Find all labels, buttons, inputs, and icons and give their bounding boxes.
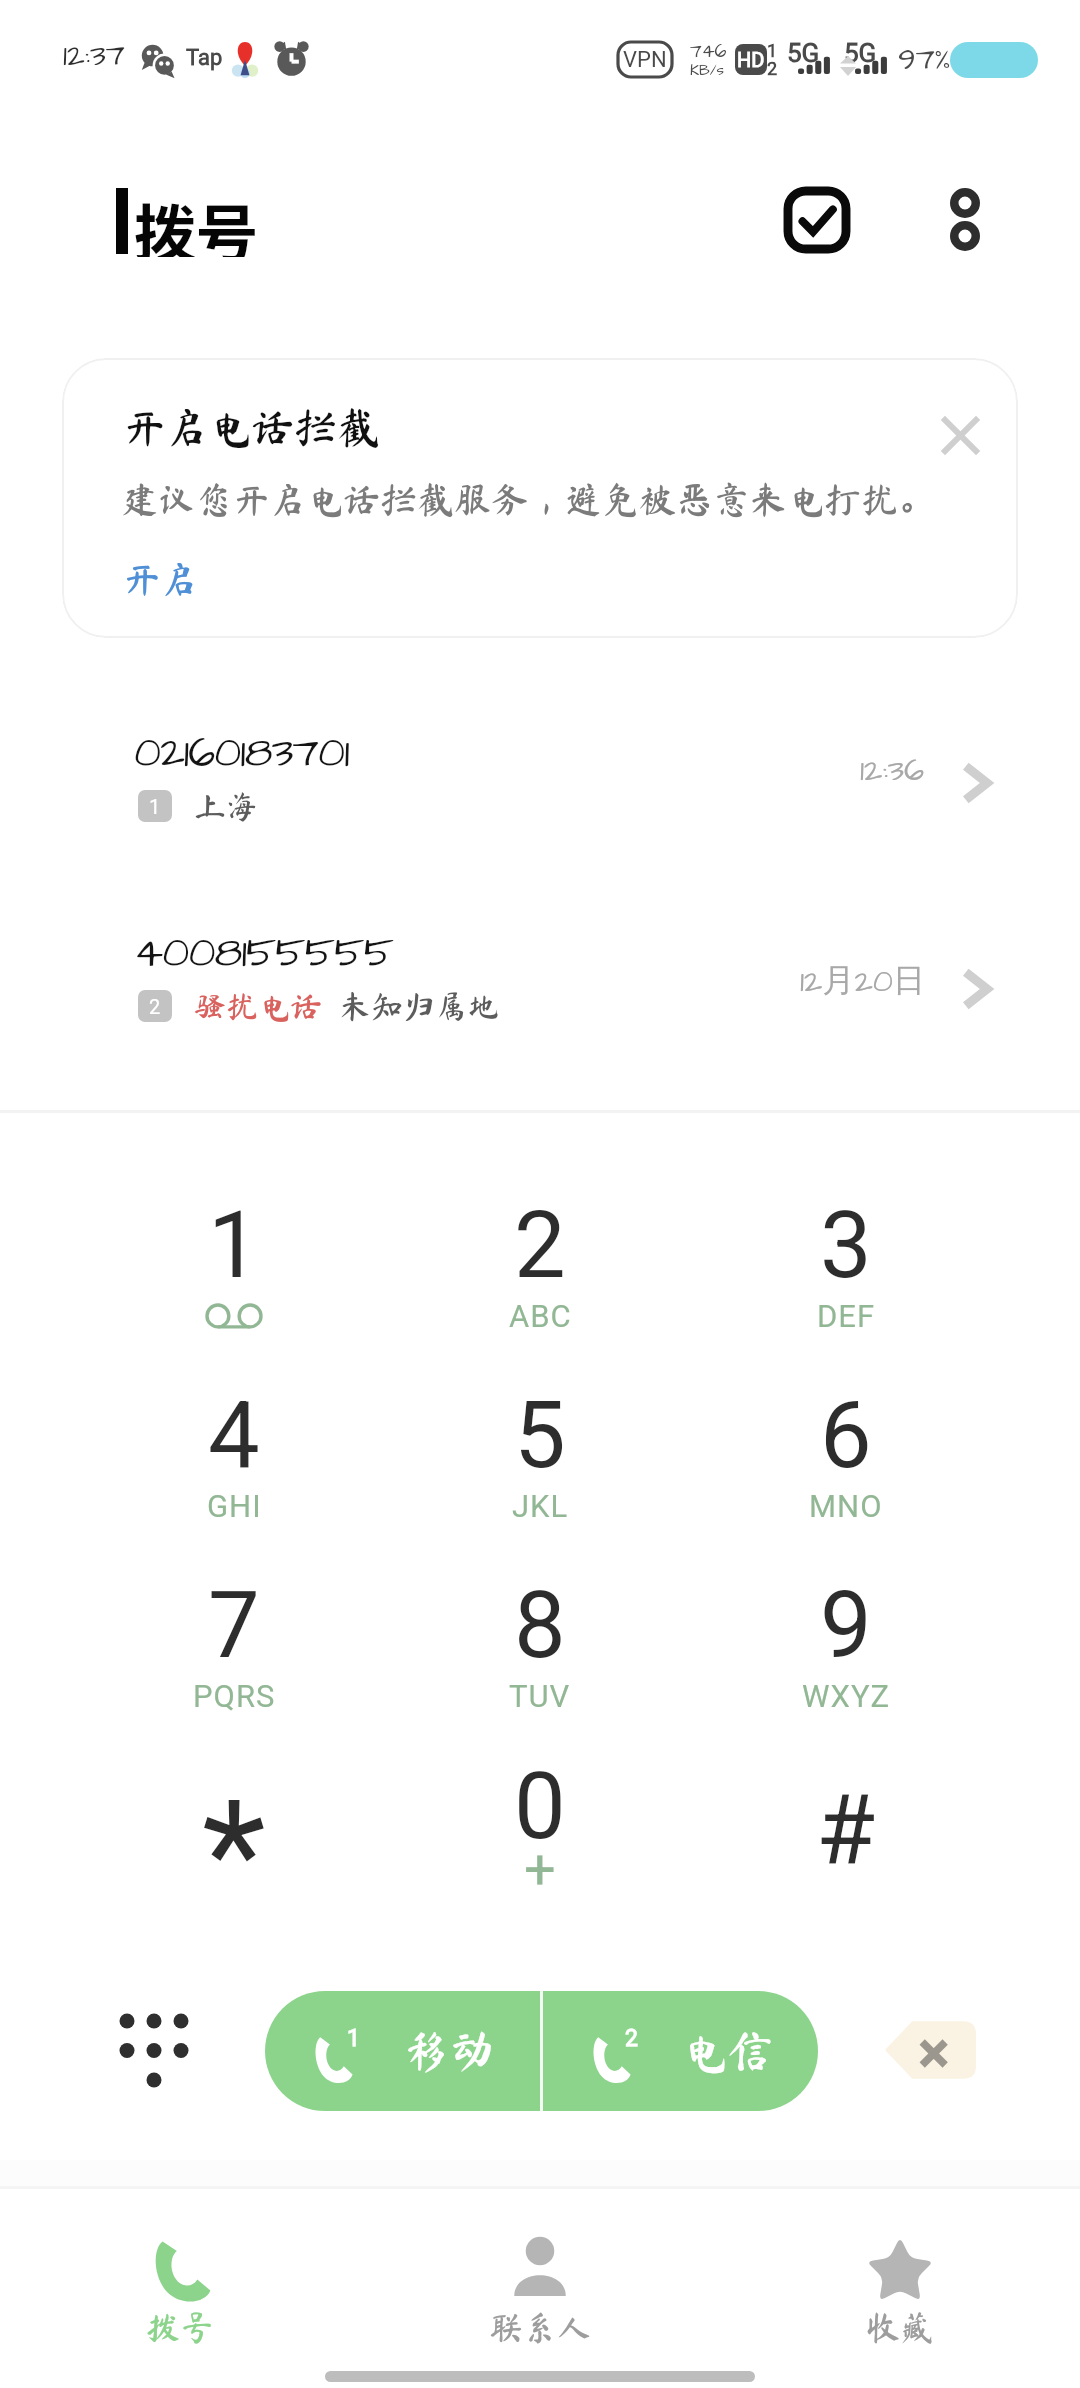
staticText: +: [524, 1837, 557, 1903]
staticText: 5G: [844, 38, 877, 68]
staticText: 6: [820, 1382, 872, 1490]
staticText: 1: [208, 1192, 260, 1300]
staticText: 2: [625, 2025, 638, 2052]
button[interactable]: 5: [387, 1348, 693, 1538]
button[interactable]: 0: [387, 1719, 693, 1909]
staticText: 移动: [403, 2028, 495, 2074]
staticText: 未知归属地: [339, 990, 500, 1022]
staticText: 拨号: [146, 2310, 214, 2344]
staticText: 建议您开启电话拦截服务，避免被恶意来电打扰。: [121, 480, 935, 517]
staticText: 5: [514, 1382, 566, 1490]
staticText: 电信: [681, 2028, 773, 2074]
staticText: Tap: [186, 45, 223, 71]
button[interactable]: #: [693, 1719, 999, 1909]
button[interactable]: 2: [387, 1158, 693, 1348]
staticText: 骚扰电话: [194, 990, 323, 1022]
staticText: 3: [820, 1192, 872, 1300]
staticText: PQRS: [193, 1678, 276, 1714]
staticText: JKL: [512, 1488, 569, 1524]
button[interactable]: 1: [81, 1158, 387, 1348]
staticText: GHI: [207, 1488, 262, 1524]
staticText: 7: [208, 1572, 260, 1680]
staticText: 4: [208, 1382, 260, 1490]
button[interactable]: 开启: [122, 560, 199, 598]
staticText: 开启电话拦截: [122, 405, 380, 448]
button[interactable]: 4: [81, 1348, 387, 1538]
staticText: 拨号: [134, 185, 259, 257]
staticText: 联系人: [489, 2310, 591, 2344]
staticText: 12:37: [63, 34, 125, 77]
staticText: 2: [767, 58, 778, 79]
staticText: 1: [767, 40, 778, 61]
staticText: MNO: [809, 1488, 883, 1524]
button[interactable]: 3: [693, 1158, 999, 1348]
staticText: HD: [737, 48, 765, 71]
staticText: ABC: [509, 1298, 572, 1334]
button[interactable]: Hide keypad: [95, 1984, 211, 2120]
staticText: 4008155555: [134, 924, 394, 984]
button[interactable]: 9: [693, 1538, 999, 1728]
button[interactable]: 收藏: [750, 2192, 1050, 2362]
button[interactable]: Delete: [885, 2018, 976, 2082]
staticText: 12:36: [860, 748, 925, 792]
button[interactable]: Close: [905, 380, 1015, 490]
staticText: 2: [514, 1192, 566, 1300]
staticText: KB/s: [690, 60, 725, 81]
button[interactable]: 6: [693, 1348, 999, 1538]
button[interactable]: 1: [265, 1991, 540, 2111]
staticText: 上海: [194, 790, 259, 822]
staticText: 8: [514, 1572, 566, 1680]
staticText: 5G: [787, 38, 820, 68]
staticText: DEF: [817, 1298, 876, 1334]
button[interactable]: 开启电话拦截: [62, 358, 1018, 638]
staticText: 收藏: [866, 2310, 934, 2344]
staticText: 97%: [898, 38, 951, 81]
button[interactable]: 4008155555: [0, 912, 1080, 1082]
staticText: 1: [149, 795, 161, 818]
staticText: 0: [514, 1753, 566, 1861]
staticText: #: [816, 1774, 876, 1887]
button[interactable]: 8: [387, 1538, 693, 1728]
staticText: 02160183701: [134, 724, 349, 784]
button[interactable]: 拨号: [30, 2192, 330, 2362]
button[interactable]: *: [81, 1719, 387, 1909]
staticText: 2: [149, 995, 161, 1018]
button[interactable]: Select: [757, 160, 877, 280]
staticText: 12月20日: [800, 959, 925, 1003]
button[interactable]: 02160183701: [0, 712, 1080, 882]
button[interactable]: More options: [905, 160, 1025, 280]
staticText: 1: [347, 2025, 360, 2052]
staticText: TUV: [509, 1678, 571, 1714]
staticText: 746: [690, 38, 727, 64]
button[interactable]: 联系人: [390, 2192, 690, 2362]
button[interactable]: 2: [543, 1991, 818, 2111]
button[interactable]: 7: [81, 1538, 387, 1728]
staticText: 9: [820, 1572, 872, 1680]
staticText: WXYZ: [802, 1678, 891, 1714]
staticText: *: [202, 1769, 266, 1942]
staticText: VPN: [623, 47, 667, 73]
